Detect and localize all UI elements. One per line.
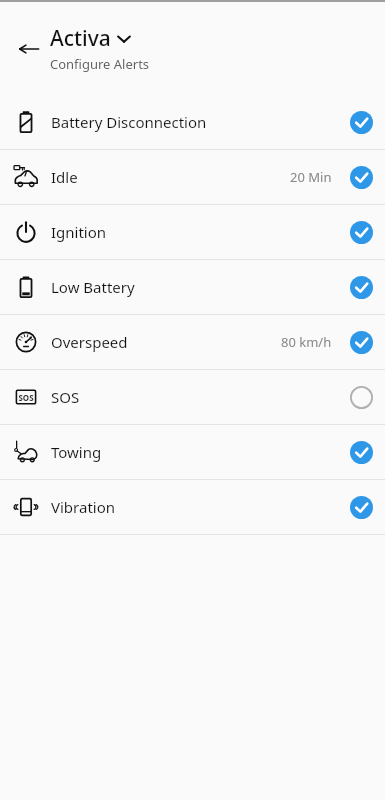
button[interactable]: Back [12,32,46,66]
button[interactable]: SOS [0,370,385,425]
staticText: Towing [51,442,350,462]
staticText: Low Battery [51,277,350,297]
staticText: Configure Alerts [50,55,150,73]
staticText: Vibration [51,497,350,517]
button[interactable]: Towing [0,425,385,480]
staticText: SOS [18,392,34,403]
staticText: Activa [50,24,111,53]
staticText: SOS [51,387,350,407]
button[interactable]: Activa [50,24,131,53]
staticText: Battery Disconnection [51,112,350,132]
button[interactable]: Vibration [0,480,385,535]
button[interactable]: Overspeed [0,315,385,370]
staticText: 80 km/h [281,333,332,351]
button[interactable]: Ignition [0,205,385,260]
button[interactable]: Idle [0,150,385,205]
staticText: 20 Min [290,168,332,186]
staticText: Overspeed [51,332,281,352]
button[interactable]: Battery Disconnection [0,95,385,150]
button[interactable]: Low Battery [0,260,385,315]
staticText: Ignition [51,222,350,242]
staticText: Idle [51,167,290,187]
